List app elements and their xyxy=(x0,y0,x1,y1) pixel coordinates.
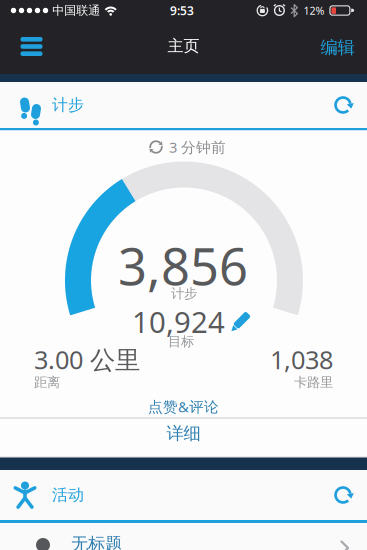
staticText: 3.00 公里 xyxy=(34,342,140,376)
staticText: 计步 xyxy=(52,95,84,115)
button[interactable]: 编辑目标 xyxy=(132,302,252,341)
staticText: 目标 xyxy=(168,333,194,350)
staticText: 主页 xyxy=(167,36,199,56)
staticText: 活动 xyxy=(52,485,84,505)
button[interactable]: 编辑 xyxy=(310,25,364,69)
staticText: 无标题 xyxy=(71,533,122,550)
staticText: 中国联通 xyxy=(52,3,100,18)
staticText: 编辑 xyxy=(320,37,354,58)
staticText: 3,856 xyxy=(118,232,248,299)
button[interactable]: 点赞&评论 xyxy=(0,394,367,418)
button[interactable]: 详细 xyxy=(0,418,367,448)
staticText: 计步 xyxy=(171,285,197,302)
button[interactable]: 无标题 xyxy=(0,523,367,550)
staticText: 卡路里 xyxy=(294,374,333,390)
staticText: 12% xyxy=(303,3,324,18)
button[interactable]: 刷新 xyxy=(326,478,360,512)
staticText: 10,924 xyxy=(132,302,225,341)
button[interactable]: 刷新 xyxy=(326,88,360,122)
staticText: 详细 xyxy=(166,423,200,444)
staticText: 3 分钟前 xyxy=(169,137,226,157)
button[interactable]: 菜单 xyxy=(9,24,53,68)
staticText: 距离 xyxy=(34,374,60,390)
staticText: 点赞&评论 xyxy=(148,397,219,416)
staticText: 1,038 xyxy=(270,342,333,376)
staticText: 9:53 xyxy=(170,2,194,18)
